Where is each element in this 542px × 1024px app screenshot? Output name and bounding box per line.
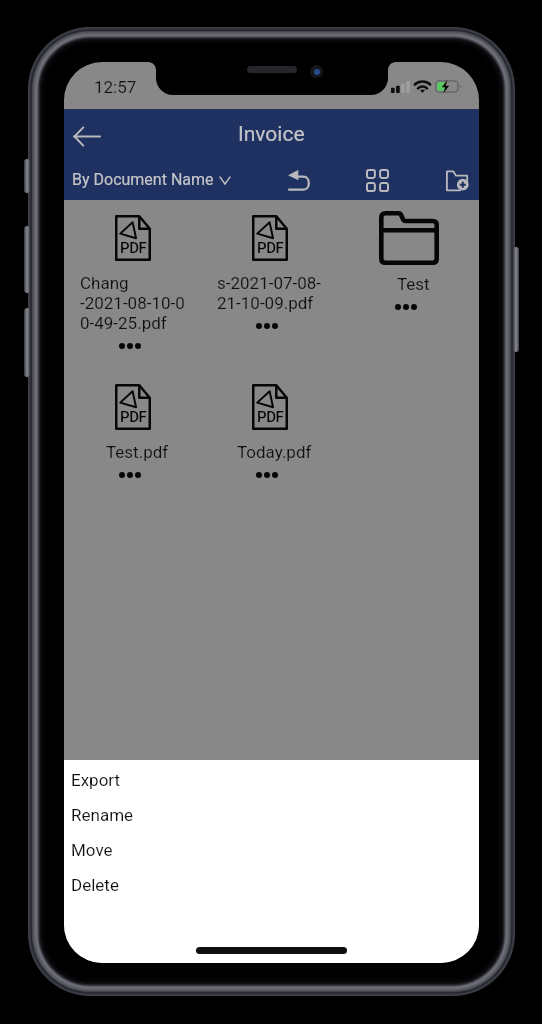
button[interactable]: PDF (65, 215, 201, 349)
staticText: Today.pdf (237, 442, 312, 462)
button[interactable]: By Document Name (68, 165, 234, 194)
staticText: 0-49-25.pdf (80, 313, 167, 333)
staticText: Move (71, 840, 113, 860)
staticText: Invoice (238, 122, 305, 147)
staticText: PDF (120, 408, 147, 426)
staticText: Chang (80, 273, 129, 293)
button[interactable]: Export (64, 762, 479, 797)
staticText: Rename (71, 805, 134, 825)
staticText: -2021-08-10-0 (80, 293, 185, 313)
staticText: s-2021-07-08- (217, 273, 322, 293)
button[interactable]: PDF (202, 215, 338, 329)
button[interactable]: Move (64, 832, 479, 867)
button[interactable]: PDF (202, 384, 338, 478)
button[interactable]: PDF (65, 384, 201, 478)
staticText: 21-10-09.pdf (217, 293, 314, 313)
button[interactable]: Delete (64, 867, 479, 902)
button[interactable]: New folder (435, 162, 479, 198)
staticText: PDF (257, 239, 284, 257)
staticText: 12:57 (94, 77, 137, 97)
staticText: PDF (120, 239, 147, 257)
button[interactable]: Back (66, 114, 108, 158)
staticText: By Document Name (72, 170, 214, 189)
button[interactable]: Rename (64, 797, 479, 832)
button[interactable]: Undo (277, 162, 321, 198)
staticText: Delete (71, 875, 119, 895)
button[interactable]: Grid view (355, 162, 399, 198)
staticText: Test.pdf (106, 442, 169, 462)
staticText: PDF (257, 408, 284, 426)
button[interactable]: Test (341, 211, 477, 310)
staticText: Export (71, 770, 121, 790)
staticText: Test (397, 274, 430, 294)
